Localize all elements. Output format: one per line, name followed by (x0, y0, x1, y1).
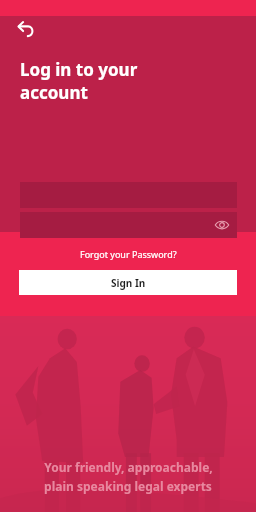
button[interactable]: Show password (211, 214, 233, 236)
button[interactable]: Password field (20, 212, 237, 238)
staticText: Log in to your (20, 58, 138, 81)
staticText: Your friendly, approachable, (44, 459, 213, 475)
button[interactable]: Sign In (19, 270, 237, 295)
staticText: account (20, 81, 88, 104)
button[interactable]: Forgot your Password? (0, 244, 256, 264)
staticText: Sign In (111, 276, 146, 290)
staticText: Forgot your Password? (80, 248, 177, 260)
staticText: plain speaking legal experts (44, 478, 212, 494)
button[interactable]: Back (10, 14, 42, 46)
